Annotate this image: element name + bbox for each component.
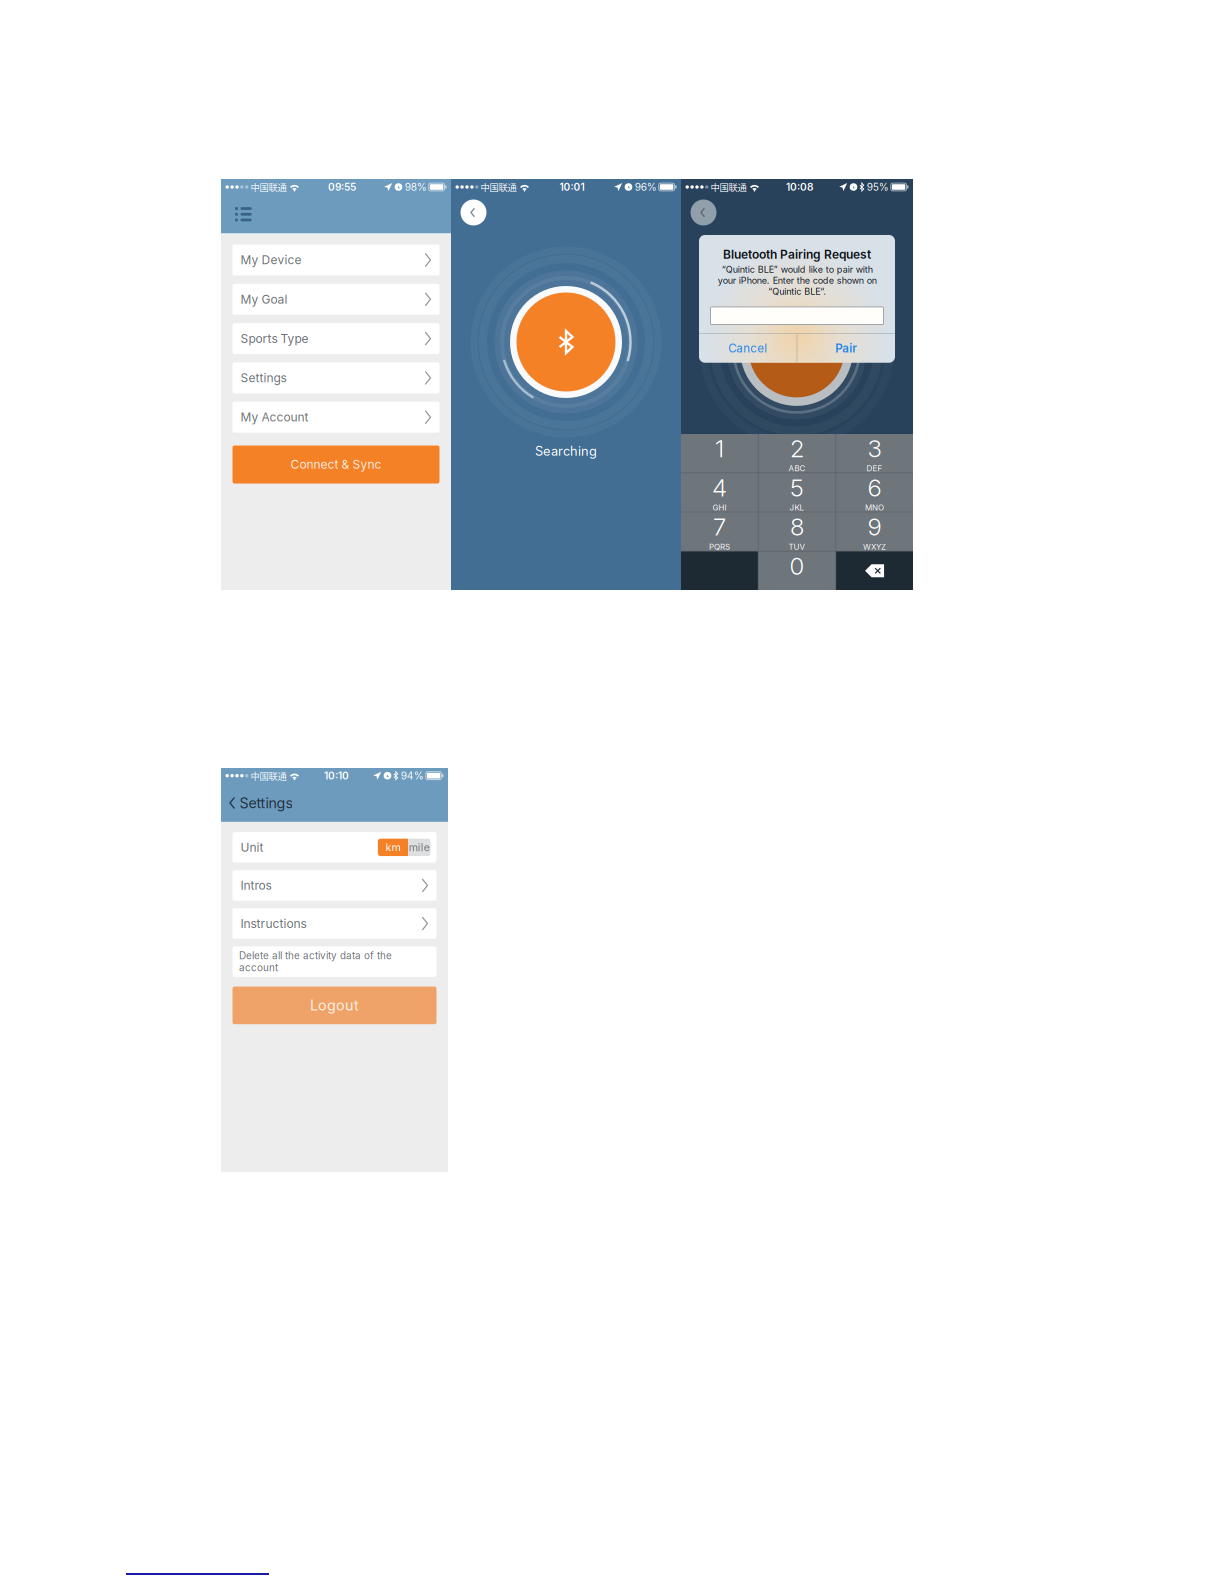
staticText: 9 xyxy=(868,512,882,541)
staticText: 2 xyxy=(790,434,804,463)
staticText: Connect & Sync xyxy=(290,457,381,472)
staticText: DEF xyxy=(867,463,883,473)
staticText: mile xyxy=(409,841,430,854)
button[interactable]: 6 xyxy=(836,473,913,512)
staticText: 09:55 xyxy=(328,181,356,193)
staticText: Unit xyxy=(240,840,263,855)
staticText: 94% xyxy=(401,770,424,782)
staticText: Pair xyxy=(835,341,857,355)
staticText: 5 xyxy=(790,473,804,502)
staticText: 中国联通 xyxy=(250,769,286,782)
button[interactable]: Settings xyxy=(232,362,439,393)
staticText: 1 xyxy=(715,434,724,463)
button[interactable]: Delete xyxy=(836,551,913,590)
staticText: Intros xyxy=(240,878,271,893)
staticText: 96% xyxy=(635,181,657,193)
staticText: PQRS xyxy=(709,542,730,552)
staticText: 10:08 xyxy=(786,181,813,193)
staticText: 0 xyxy=(789,551,804,580)
staticText: Instructions xyxy=(240,916,306,931)
staticText: 10:10 xyxy=(324,770,349,782)
button[interactable]: Delete all the activity data of the acco… xyxy=(232,946,436,977)
staticText: Settings xyxy=(239,794,293,812)
staticText: 7 xyxy=(713,512,726,541)
button[interactable]: My Account xyxy=(232,402,439,433)
button[interactable]: Instructions xyxy=(232,908,436,939)
button[interactable]: 0 xyxy=(759,551,835,590)
staticText: Bluetooth Pairing Request xyxy=(723,247,871,261)
staticText: 3 xyxy=(868,434,882,463)
staticText: WXYZ xyxy=(863,542,886,552)
button[interactable]: Back xyxy=(459,198,488,227)
staticText: 中国联通 xyxy=(480,180,516,194)
staticText: 98% xyxy=(405,181,427,193)
button[interactable]: Unit xyxy=(232,832,436,863)
staticText: 8 xyxy=(790,512,804,541)
staticText: Logout xyxy=(310,997,359,1014)
button[interactable]: My Device xyxy=(232,244,439,275)
staticText: “Quintic BLE” would like to pair with yo… xyxy=(717,264,876,297)
staticText: My Goal xyxy=(240,292,287,306)
button[interactable]: Logout xyxy=(232,986,436,1024)
button[interactable]: 4 xyxy=(681,473,758,512)
staticText xyxy=(718,463,720,473)
button[interactable]: Pair xyxy=(797,334,895,363)
button[interactable]: Sports Type xyxy=(232,323,439,354)
staticText: 10:01 xyxy=(560,181,585,193)
staticText: 中国联通 xyxy=(710,180,746,194)
staticText: JKL xyxy=(789,503,804,512)
button[interactable]: 7 xyxy=(681,512,758,551)
button[interactable]: Menu xyxy=(235,206,252,223)
button[interactable]: Connect & Sync xyxy=(232,445,439,483)
staticText: 95% xyxy=(867,181,889,193)
button[interactable]: Settings xyxy=(230,794,293,812)
button[interactable]: 3 xyxy=(836,434,913,472)
staticText xyxy=(796,581,798,591)
staticText: 4 xyxy=(712,473,727,502)
button[interactable]: My Goal xyxy=(232,284,439,315)
staticText: Cancel xyxy=(728,341,767,355)
staticText: Delete all the activity data of the acco… xyxy=(239,950,392,974)
button[interactable]: 2 xyxy=(759,434,835,472)
button[interactable]: Back xyxy=(689,198,718,227)
staticText: km xyxy=(385,841,400,854)
staticText: ABC xyxy=(788,463,805,473)
button[interactable]: Intros xyxy=(232,870,436,901)
staticText: MNO xyxy=(865,503,884,512)
staticText: TUV xyxy=(788,542,805,552)
staticText: Searching xyxy=(535,443,597,459)
staticText: 6 xyxy=(868,473,882,502)
staticText: GHI xyxy=(712,503,726,512)
button[interactable]: Cancel xyxy=(699,334,797,363)
staticText: My Device xyxy=(240,253,301,267)
staticText: Sports Type xyxy=(240,331,308,346)
button[interactable]: 9 xyxy=(836,512,913,551)
button[interactable]: 1 xyxy=(681,434,758,472)
staticText: My Account xyxy=(240,410,308,424)
staticText: 中国联通 xyxy=(250,180,286,194)
button[interactable]: 5 xyxy=(759,473,835,512)
staticText: Settings xyxy=(240,371,286,385)
button[interactable]: 8 xyxy=(759,512,835,551)
